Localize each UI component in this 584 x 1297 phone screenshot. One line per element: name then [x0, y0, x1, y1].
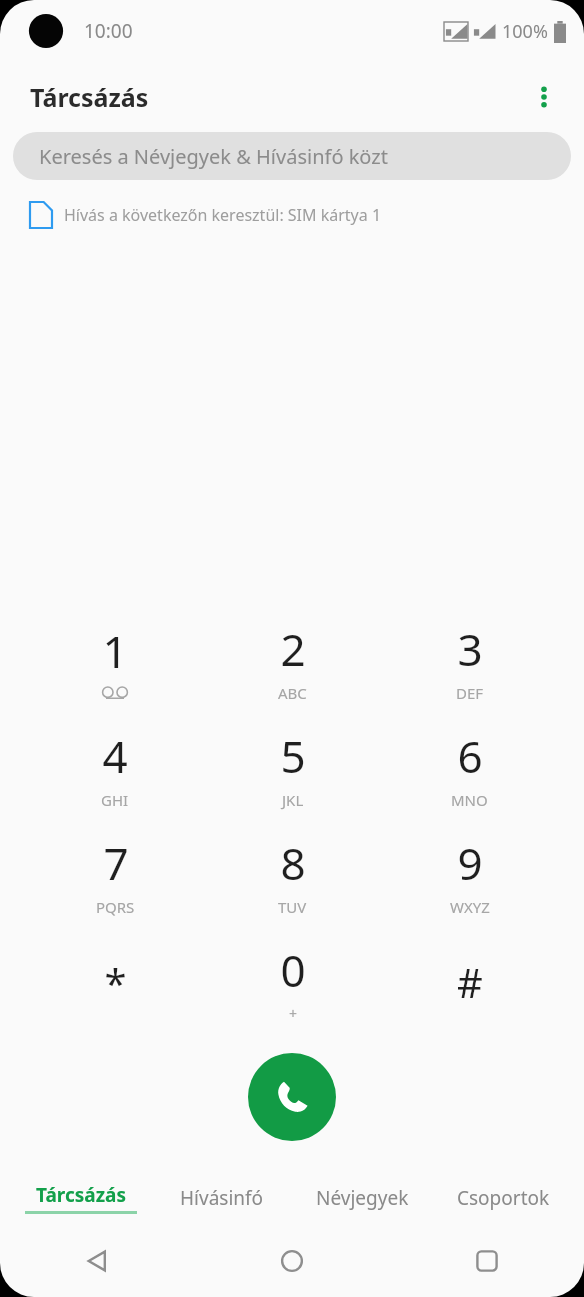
staticText: 4	[102, 726, 128, 786]
staticText: 2	[280, 619, 306, 679]
button[interactable]: Hívás a következőn keresztül: SIM kártya…	[30, 202, 584, 228]
button[interactable]: 8	[204, 821, 381, 928]
staticText: 9	[457, 833, 483, 893]
staticText: ABC	[278, 683, 307, 703]
staticText: 6	[457, 726, 483, 786]
button[interactable]: 6	[381, 714, 558, 821]
button[interactable]: *	[26, 928, 204, 1035]
staticText: Keresés a Névjegyek & Hívásinfó közt	[39, 143, 388, 170]
staticText: Hívás a következőn keresztül: SIM kártya…	[64, 204, 382, 226]
button[interactable]: Home	[194, 1225, 389, 1297]
button[interactable]: 0	[204, 928, 381, 1035]
button[interactable]: More options	[518, 71, 570, 123]
staticText: Csoportok	[457, 1185, 550, 1211]
staticText: PQRS	[96, 897, 135, 917]
staticText: *	[104, 955, 127, 1009]
button[interactable]: Hívásinfó	[151, 1171, 292, 1225]
staticText: 3	[457, 619, 483, 679]
staticText: JKL	[282, 790, 304, 810]
staticText: 100%	[502, 19, 548, 44]
button[interactable]: 3	[381, 607, 558, 714]
staticText: +	[289, 1004, 298, 1023]
staticText: TUV	[278, 897, 307, 917]
button[interactable]: 7	[26, 821, 204, 928]
button[interactable]: Csoportok	[433, 1171, 574, 1225]
staticText: Névjegyek	[316, 1185, 409, 1211]
staticText: 0	[280, 940, 306, 1000]
button[interactable]: 5	[204, 714, 381, 821]
staticText: Tárcsázás	[36, 1182, 126, 1208]
button[interactable]: Tárcsázás	[10, 1171, 151, 1225]
staticText: DEF	[456, 683, 484, 703]
button[interactable]: 4	[26, 714, 204, 821]
staticText: GHI	[101, 790, 129, 810]
button[interactable]: Recent apps	[389, 1225, 584, 1297]
button[interactable]: Back	[0, 1225, 194, 1297]
staticText: 1	[102, 621, 128, 681]
staticText: MNO	[451, 790, 488, 810]
staticText: 10:00	[84, 18, 133, 44]
staticText: Hívásinfó	[180, 1185, 264, 1211]
button[interactable]: Call	[248, 1053, 336, 1141]
button[interactable]: Névjegyek	[292, 1171, 433, 1225]
staticText: Tárcsázás	[30, 80, 149, 114]
button[interactable]: 1	[26, 607, 204, 714]
staticText: WXYZ	[450, 897, 490, 917]
button[interactable]: Keresés a Névjegyek & Hívásinfó közt	[13, 132, 571, 180]
button[interactable]: 2	[204, 607, 381, 714]
staticText: #	[457, 955, 483, 1009]
button[interactable]: 9	[381, 821, 558, 928]
staticText: 8	[280, 833, 306, 893]
staticText: 7	[103, 833, 129, 893]
button[interactable]: #	[381, 928, 558, 1035]
staticText: 5	[280, 726, 306, 786]
